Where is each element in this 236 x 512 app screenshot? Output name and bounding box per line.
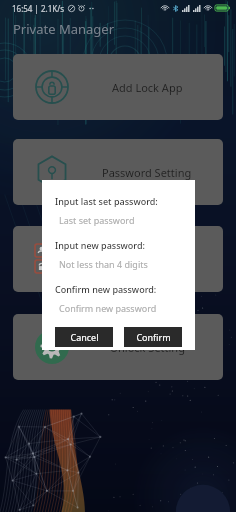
staticText: 16:54 | 2.1K/s <box>12 3 65 14</box>
button[interactable]: Cancel <box>55 327 113 347</box>
staticText: Cancel <box>70 331 99 343</box>
button[interactable]: Add Lock App <box>13 54 223 120</box>
button[interactable]: Password Setting <box>13 139 223 205</box>
staticText: Unlock Setting <box>110 340 185 355</box>
staticText: Password Setting <box>102 165 192 180</box>
staticText: Confirm new password <box>59 302 157 314</box>
staticText: Not less than 4 digits <box>59 258 148 270</box>
staticText: Last set password <box>59 214 135 226</box>
button[interactable]: Unlock Setting <box>13 314 223 380</box>
staticText: Private Manager <box>13 20 114 38</box>
staticText: Add Lock App <box>112 80 183 95</box>
button[interactable]: Privacy Setting <box>13 226 223 292</box>
staticText: Input last set password: <box>55 195 158 207</box>
staticText: Privacy Setting <box>109 252 186 267</box>
button[interactable]: Confirm <box>124 327 182 347</box>
staticText: Confirm <box>136 331 171 343</box>
staticText: Input new password: <box>55 239 145 251</box>
staticText: Confirm new password: <box>55 283 157 295</box>
